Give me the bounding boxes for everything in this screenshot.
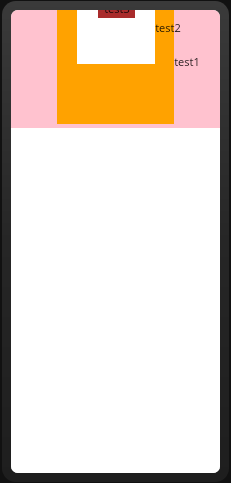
button[interactable]: test2 — [77, 10, 155, 64]
staticText: test2 — [155, 20, 181, 35]
button[interactable]: test3 — [98, 10, 135, 18]
staticText: test1 — [174, 54, 200, 69]
staticText: test3 — [104, 10, 130, 16]
button[interactable]: test1 — [57, 10, 174, 124]
